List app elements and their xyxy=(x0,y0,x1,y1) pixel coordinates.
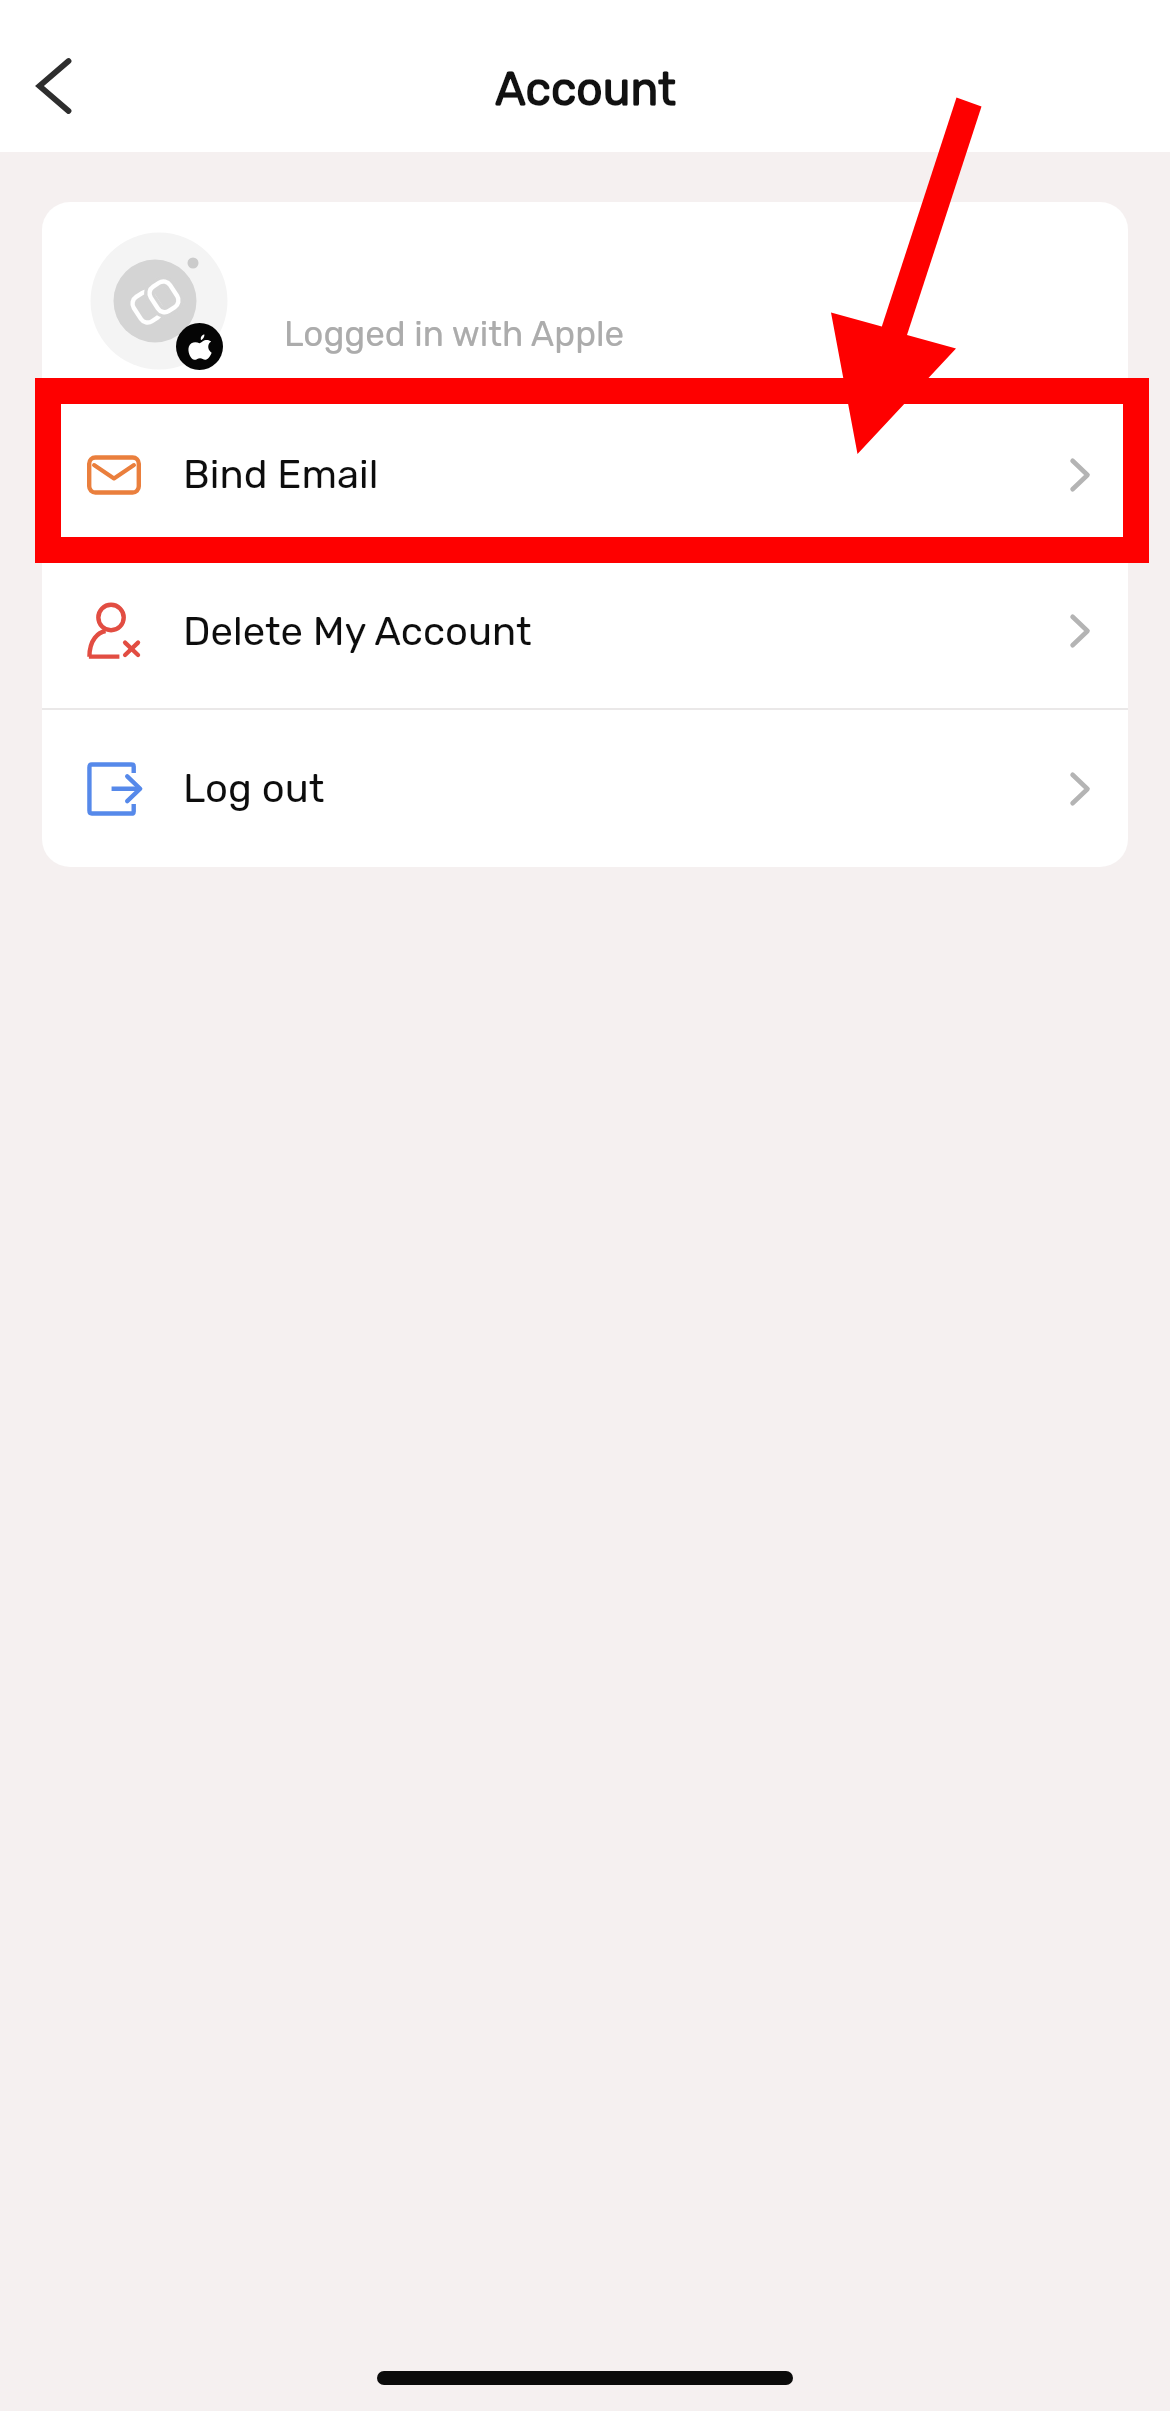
staticText: Delete My Account xyxy=(183,608,532,655)
button[interactable]: Log out xyxy=(42,710,1128,867)
button[interactable]: Delete My Account xyxy=(42,554,1128,708)
staticText: Bind Email xyxy=(183,451,379,498)
staticText: Account xyxy=(495,62,676,117)
staticText: Logged in with Apple xyxy=(284,313,625,354)
staticText: Log out xyxy=(183,765,325,812)
button[interactable]: Back xyxy=(2,34,106,138)
button[interactable]: Bind Email xyxy=(42,397,1128,552)
